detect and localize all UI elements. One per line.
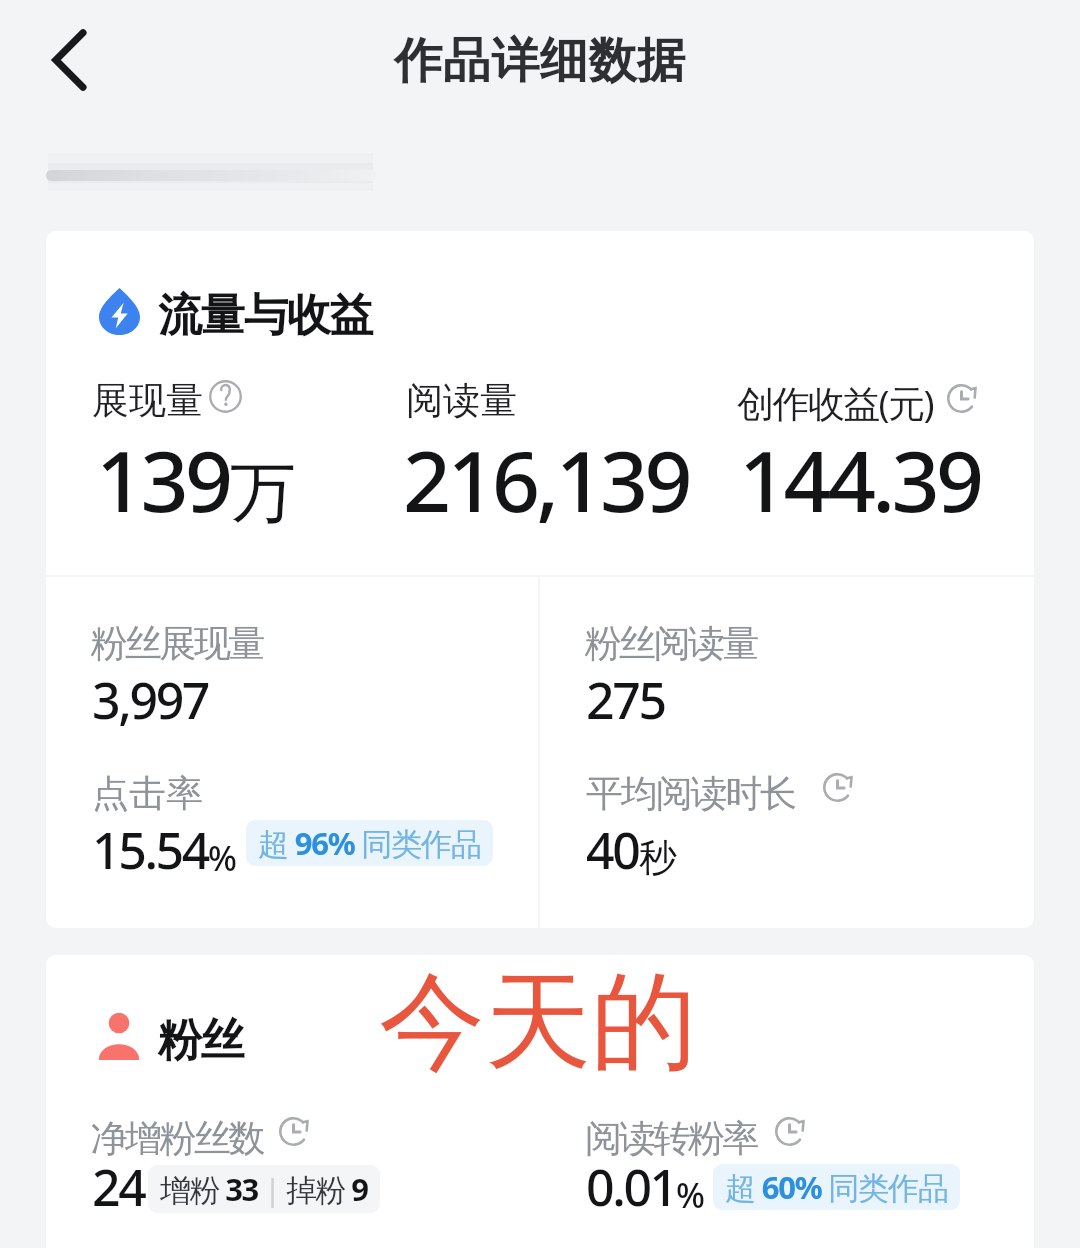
staticText: 点击率 [92, 770, 203, 817]
button[interactable]: 阅读量 216,139 [357, 349, 691, 519]
staticText: 3,997 [92, 666, 209, 734]
staticText: 流量与收益 [158, 288, 373, 343]
button[interactable]: 净增粉丝数更新说明 [277, 1115, 310, 1148]
staticText: 今天的 [379, 956, 697, 1090]
staticText: 粉丝展现量 [92, 620, 264, 667]
staticText: 15.54 [92, 816, 208, 884]
button[interactable]: 展现量说明 [209, 380, 242, 413]
button[interactable]: 粉丝展现量 3,997 [46, 577, 538, 752]
staticText: 粉丝阅读量 [586, 620, 758, 667]
staticText: 144.39 [739, 422, 981, 536]
staticText: 阅读量 [406, 377, 517, 424]
button[interactable]: 创作收益更新说明 [945, 382, 978, 415]
button[interactable]: 点击率 15.54% [46, 752, 538, 928]
button[interactable]: 展现量 139万 [46, 349, 356, 519]
staticText: 275 [586, 666, 665, 734]
staticText: 平均阅读时长 [586, 770, 795, 817]
button[interactable]: 粉丝阅读量 275 [540, 577, 1034, 752]
staticText: 139 [96, 422, 230, 536]
staticText: % [676, 1172, 704, 1218]
staticText: 阅读转粉率 [586, 1115, 758, 1162]
staticText: 超 60% 同类作品 [725, 1166, 948, 1208]
staticText: 40 [586, 816, 639, 884]
staticText: 增粉 33 | 掉粉 9 [160, 1168, 368, 1210]
button[interactable]: 净增粉丝数 24 [46, 1085, 538, 1225]
staticText: 展现量 [92, 377, 203, 424]
staticText: 粉丝 [158, 1013, 243, 1068]
staticText: 超 96% 同类作品 [258, 822, 481, 864]
staticText: 24 [92, 1153, 145, 1221]
staticText: 净增粉丝数 [92, 1115, 264, 1162]
button[interactable]: 创作收益(元) 144.39 [691, 349, 1034, 519]
staticText: 万 [230, 451, 296, 534]
button[interactable]: 平均阅读时长 40秒 [540, 752, 1034, 928]
button[interactable]: Back [14, 14, 106, 106]
staticText: % [208, 835, 236, 881]
staticText: 创作收益(元) [737, 377, 933, 428]
staticText: 作品详细数据 [394, 31, 686, 91]
button[interactable]: 阅读转粉率 0.01% [540, 1085, 1034, 1225]
button[interactable]: 平均阅读时长更新说明 [821, 771, 854, 804]
staticText: 216,139 [403, 422, 690, 536]
staticText: 0.01 [586, 1153, 676, 1221]
staticText: 秒 [639, 834, 677, 882]
button[interactable]: 阅读转粉率更新说明 [773, 1115, 806, 1148]
